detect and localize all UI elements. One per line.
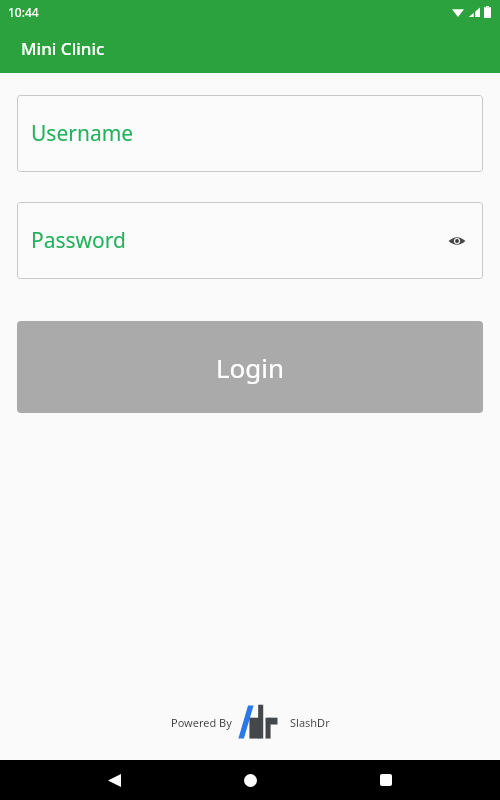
staticText: Powered By <box>171 715 232 730</box>
button[interactable]: Username <box>17 95 483 172</box>
staticText: 10:44 <box>8 4 39 20</box>
button[interactable]: Home <box>228 760 272 800</box>
staticText: Password <box>31 226 126 255</box>
staticText: Username <box>31 119 134 148</box>
button[interactable]: Show password <box>439 223 475 259</box>
button[interactable]: Back <box>92 760 136 800</box>
staticText: Mini Clinic <box>21 37 105 60</box>
button[interactable]: Password <box>17 202 483 279</box>
button[interactable]: Login <box>17 321 483 413</box>
staticText: Login <box>216 350 285 385</box>
staticText: SlashDr <box>290 715 330 730</box>
button[interactable]: Recent apps <box>364 760 408 800</box>
